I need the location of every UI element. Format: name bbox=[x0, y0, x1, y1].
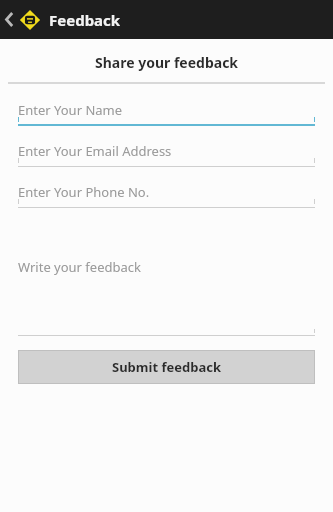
button[interactable]: Back bbox=[0, 0, 18, 39]
staticText: Write your feedback bbox=[18, 258, 141, 276]
button[interactable]: Write your feedback bbox=[18, 256, 315, 336]
staticText: Share your feedback bbox=[95, 53, 239, 72]
staticText: Enter Your Phone No. bbox=[18, 183, 150, 201]
button[interactable]: Enter Your Email Address bbox=[18, 140, 315, 167]
staticText: Feedback bbox=[49, 10, 121, 30]
button[interactable]: Submit feedback bbox=[19, 351, 314, 383]
staticText: Submit feedback bbox=[112, 358, 221, 376]
button[interactable]: App icon bbox=[18, 8, 42, 32]
staticText: Enter Your Name bbox=[18, 101, 123, 119]
button[interactable]: Enter Your Phone No. bbox=[18, 181, 315, 208]
button[interactable]: Enter Your Name bbox=[18, 99, 315, 126]
staticText: Enter Your Email Address bbox=[18, 142, 172, 160]
